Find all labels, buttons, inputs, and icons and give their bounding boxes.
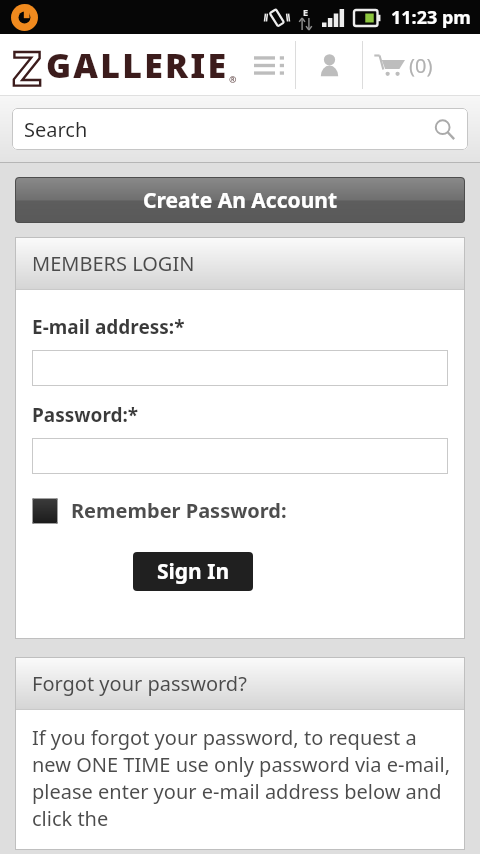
staticText: Search xyxy=(24,116,88,143)
staticText: If you forgot your password, to request … xyxy=(32,724,455,832)
staticText: Forgot your password? xyxy=(32,670,247,697)
staticText: Sign In xyxy=(157,557,230,586)
staticText: Remember Password: xyxy=(71,497,287,524)
staticText: E-mail address:* xyxy=(32,314,185,340)
button[interactable]: Remember Password: xyxy=(32,497,287,524)
button[interactable] xyxy=(32,350,448,386)
button[interactable]: Search xyxy=(12,108,468,150)
staticText: Password:* xyxy=(32,402,139,428)
staticText: E xyxy=(303,6,309,18)
button[interactable]: Sign In xyxy=(133,552,253,591)
button[interactable] xyxy=(32,438,448,474)
button[interactable]: Menu xyxy=(247,38,291,92)
staticText: (0) xyxy=(409,52,433,79)
staticText: Create An Account xyxy=(143,186,338,215)
staticText: MEMBERS LOGIN xyxy=(32,250,195,277)
button[interactable]: (0) xyxy=(374,38,433,92)
staticText: 11:23 pm xyxy=(391,5,471,30)
button[interactable]: Account xyxy=(296,38,362,92)
button[interactable]: Create An Account xyxy=(15,177,465,223)
staticText: GALLERIE xyxy=(46,42,229,88)
staticText: ® xyxy=(229,73,237,85)
